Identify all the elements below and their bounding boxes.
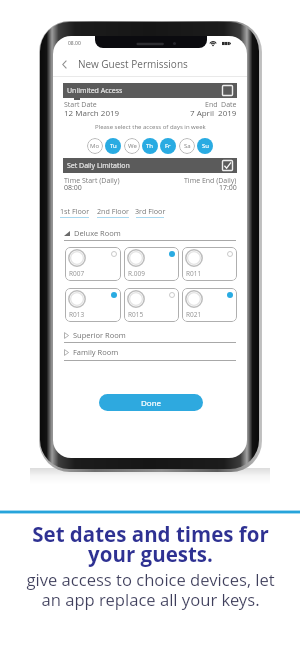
staticText: 3rd Floor bbox=[135, 206, 166, 215]
button[interactable]: Mo bbox=[87, 138, 103, 154]
staticText: Su bbox=[202, 142, 209, 150]
staticText: R.009 bbox=[128, 269, 145, 278]
staticText: 7 April 2019 bbox=[190, 107, 237, 118]
staticText: R013 bbox=[69, 310, 85, 319]
staticText: Time End (Daily) bbox=[184, 176, 237, 186]
staticText: New Guest Permissions bbox=[78, 57, 188, 71]
button[interactable]: R011 bbox=[182, 247, 237, 281]
button[interactable]: Back bbox=[53, 53, 247, 75]
button[interactable]: Deluxe Room bbox=[64, 228, 236, 238]
staticText: 2nd Floor bbox=[97, 206, 129, 215]
button[interactable]: R007 bbox=[65, 247, 121, 281]
button[interactable]: 3rd Floor bbox=[136, 206, 164, 215]
button[interactable]: Th bbox=[142, 138, 158, 154]
staticText: Unlimited Access bbox=[67, 86, 123, 96]
button[interactable]: Fr bbox=[160, 138, 176, 154]
button[interactable]: Sa bbox=[179, 138, 195, 154]
button[interactable]: Family Room bbox=[64, 347, 236, 357]
button[interactable]: Back bbox=[54, 53, 74, 75]
button[interactable]: 1st Floor bbox=[60, 206, 89, 215]
staticText: Start Date bbox=[64, 100, 97, 110]
staticText: Mo bbox=[90, 142, 100, 150]
staticText: 12 March 2019 bbox=[64, 107, 120, 118]
button[interactable]: Done bbox=[99, 394, 203, 411]
staticText: Done bbox=[141, 397, 162, 408]
button[interactable]: Su bbox=[197, 138, 213, 154]
staticText: End Date bbox=[205, 100, 237, 110]
staticText: 17:00 bbox=[219, 183, 237, 193]
button[interactable]: R015 bbox=[124, 288, 179, 322]
staticText: Deluxe Room bbox=[74, 228, 121, 238]
staticText: R007 bbox=[69, 269, 85, 278]
button[interactable]: Tu bbox=[105, 138, 121, 154]
staticText: give access to choice devices, let an ap… bbox=[26, 568, 275, 611]
staticText: We bbox=[128, 142, 137, 150]
button[interactable]: R021 bbox=[182, 288, 237, 322]
staticText: Th bbox=[146, 142, 154, 150]
staticText: Fr bbox=[165, 142, 171, 150]
staticText: Please select the access of days in week bbox=[95, 123, 206, 131]
staticText: 08:00 bbox=[64, 183, 82, 193]
staticText: 1st Floor bbox=[60, 206, 90, 215]
staticText: Set dates and times for your guests. bbox=[32, 520, 269, 568]
staticText: R021 bbox=[186, 310, 202, 319]
staticText: Set Daily Limitation bbox=[67, 161, 130, 171]
button[interactable]: Set Daily Limitation bbox=[63, 158, 237, 173]
button[interactable]: R013 bbox=[65, 288, 121, 322]
staticText: Tu bbox=[110, 142, 117, 150]
button[interactable]: R.009 bbox=[124, 247, 179, 281]
staticText: Sa bbox=[184, 142, 191, 150]
staticText: R015 bbox=[128, 310, 144, 319]
button[interactable]: 2nd Floor bbox=[97, 206, 129, 215]
staticText: Family Room bbox=[73, 347, 119, 357]
button[interactable]: We bbox=[124, 138, 140, 154]
staticText: Time Start (Daily) bbox=[64, 176, 120, 186]
button[interactable]: Unlimited Access bbox=[63, 83, 237, 98]
staticText: R011 bbox=[186, 269, 202, 278]
staticText: Superior Room bbox=[73, 330, 126, 340]
button[interactable]: Superior Room bbox=[64, 330, 236, 340]
staticText: 08.00 bbox=[68, 40, 81, 47]
